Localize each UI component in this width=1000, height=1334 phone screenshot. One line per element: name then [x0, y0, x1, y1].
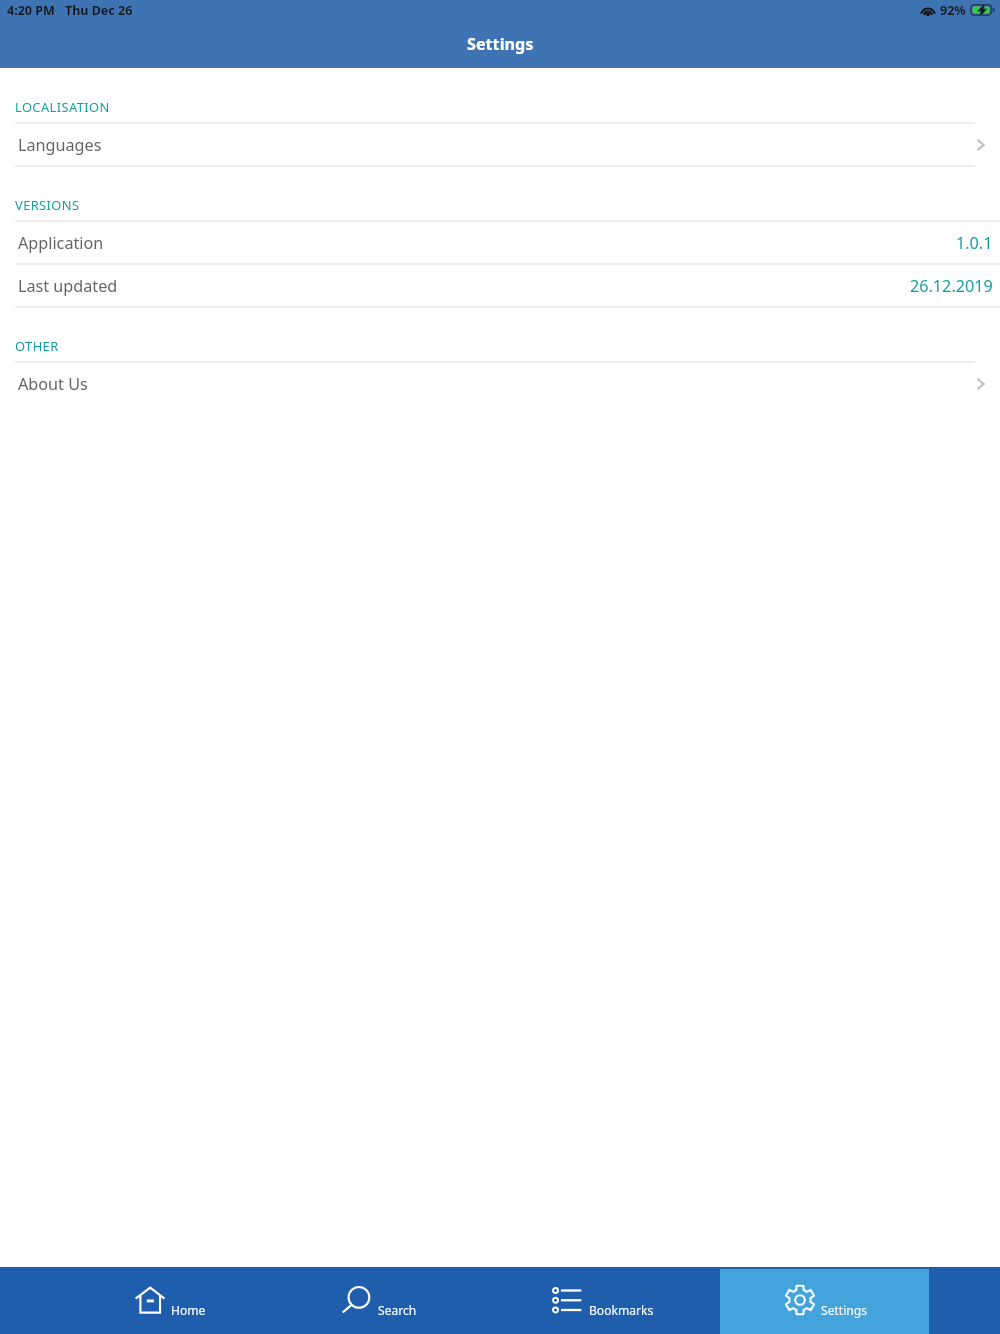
button[interactable]: Settings [720, 1267, 1000, 1334]
button[interactable]: About Us [0, 363, 1000, 404]
button[interactable]: Last updated [0, 265, 1000, 306]
staticText: Bookmarks [589, 1302, 654, 1318]
button[interactable]: Search [302, 1267, 511, 1334]
staticText: 1.0.1 [956, 232, 993, 254]
staticText: Languages [18, 134, 102, 156]
staticText: Settings [467, 33, 534, 55]
staticText: About Us [18, 373, 88, 395]
staticText: Search [378, 1302, 417, 1318]
staticText: Home [171, 1302, 206, 1318]
staticText: Last updated [18, 275, 118, 297]
button[interactable]: Bookmarks [511, 1267, 720, 1334]
button[interactable]: Languages [0, 124, 1000, 165]
staticText: 4:20 PM [7, 2, 55, 19]
staticText: Thu Dec 26 [65, 2, 133, 19]
staticText: 92% [940, 2, 966, 19]
staticText: VERSIONS [15, 196, 80, 214]
staticText: LOCALISATION [15, 98, 110, 116]
button[interactable]: Application [0, 222, 1000, 263]
button[interactable]: Home [0, 1267, 302, 1334]
staticText: OTHER [15, 337, 59, 355]
staticText: 26.12.2019 [910, 275, 993, 297]
staticText: Application [18, 232, 104, 254]
staticText: Settings [821, 1302, 868, 1318]
